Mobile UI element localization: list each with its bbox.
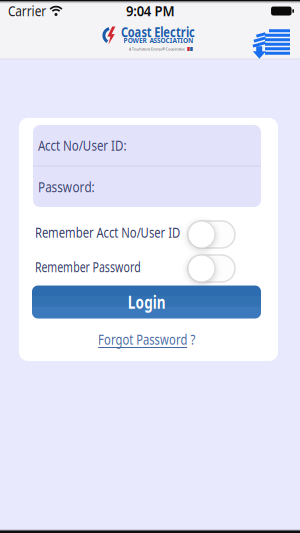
button[interactable]: Password (38, 166, 258, 206)
staticText: Remember Password (35, 257, 182, 276)
staticText: POWER ASSOCIATION (108, 34, 208, 47)
staticText: Acct No/User ID: (38, 135, 151, 155)
button[interactable]: Remember Password (188, 255, 235, 282)
staticText: Carrier (8, 1, 55, 20)
staticText: Password: (38, 177, 109, 196)
staticText: Coast Electric (109, 22, 207, 41)
staticText: Remember Acct No/User ID (35, 222, 224, 242)
button[interactable]: Acct No/User ID (38, 125, 258, 165)
staticText: Forgot Password ? (83, 329, 210, 349)
staticText: 9:04 PM (123, 1, 178, 20)
staticText: A Touchstone Energy® Cooperative (79, 43, 234, 55)
staticText: Login (122, 290, 170, 313)
button[interactable]: Forgot Password ? (61, 329, 231, 348)
button[interactable]: Remember Acct No/User ID (188, 221, 235, 248)
button[interactable]: Login (32, 285, 261, 318)
button[interactable]: Menu (241, 22, 287, 62)
